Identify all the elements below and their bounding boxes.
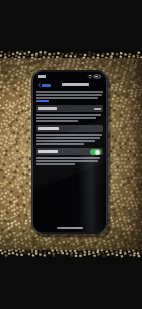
button[interactable] <box>36 105 103 112</box>
button[interactable]: Back <box>37 82 52 88</box>
button[interactable]: Back <box>0 58 142 250</box>
button[interactable]: Toggle <box>36 148 103 155</box>
button[interactable] <box>36 125 103 132</box>
button[interactable] <box>36 100 49 102</box>
button[interactable]: Toggle <box>90 149 101 155</box>
